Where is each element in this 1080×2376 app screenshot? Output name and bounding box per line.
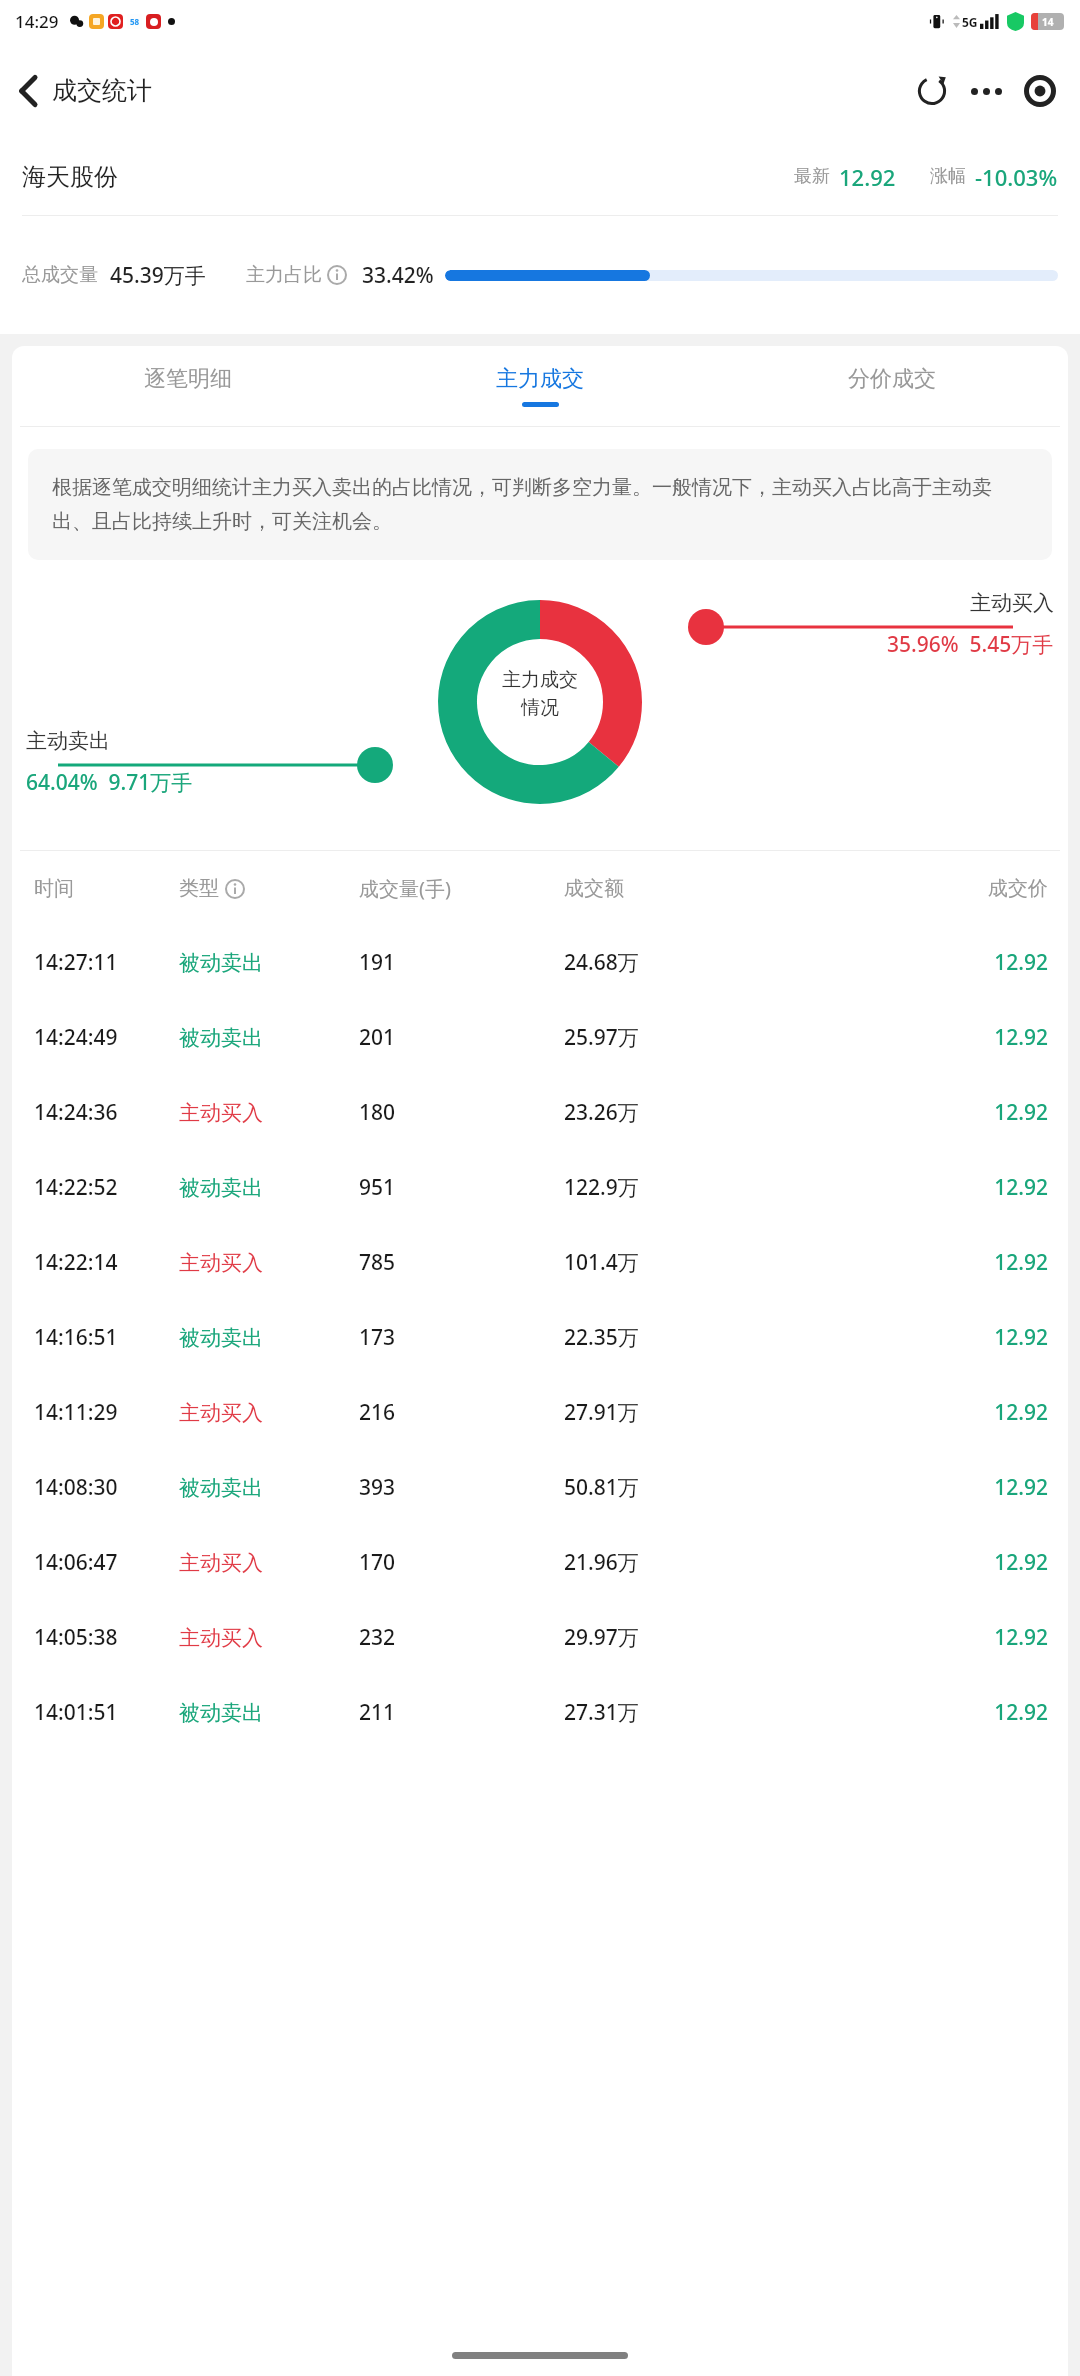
staticText: 785	[359, 1248, 564, 1277]
staticText: 24.68万	[564, 948, 764, 977]
staticText: 情况	[521, 696, 559, 720]
staticText: 14:24:49	[34, 1023, 179, 1052]
staticText: 主动买入	[970, 590, 1054, 616]
staticText: 总成交量	[22, 263, 98, 287]
staticText: 216	[359, 1398, 564, 1427]
button[interactable]: 主力占比	[246, 263, 347, 287]
staticText: 主动买入	[179, 1625, 359, 1651]
staticText: 29.97万	[564, 1623, 764, 1652]
button[interactable]: 14:22:14	[12, 1225, 1068, 1300]
staticText: 14:11:29	[34, 1398, 179, 1427]
staticText: 14:22:52	[34, 1173, 179, 1202]
staticText: 被动卖出	[179, 950, 359, 976]
button[interactable]: 14:05:38	[12, 1600, 1068, 1675]
button[interactable]: Back	[12, 68, 44, 114]
button[interactable]: Refresh	[911, 70, 953, 112]
button[interactable]: 14:06:47	[12, 1525, 1068, 1600]
staticText: 根据逐笔成交明细统计主力买入卖出的占比情况，可判断多空力量。一般情况下，主动买入…	[52, 475, 1028, 534]
staticText: 201	[359, 1023, 564, 1052]
staticText: 50.81万	[564, 1473, 764, 1502]
staticText: 主动买入	[179, 1250, 359, 1276]
staticText: 951	[359, 1173, 564, 1202]
staticText: 58	[130, 16, 140, 27]
button[interactable]: Target	[1020, 71, 1060, 111]
staticText: 12.92	[764, 1623, 1048, 1652]
staticText: 被动卖出	[179, 1475, 359, 1501]
staticText: 211	[359, 1698, 564, 1727]
staticText: 191	[359, 948, 564, 977]
staticText: 12.92	[764, 948, 1048, 977]
staticText: 主动买入	[179, 1550, 359, 1576]
staticText: 12.92	[764, 1248, 1048, 1277]
staticText: 12.92	[764, 1323, 1048, 1352]
staticText: 232	[359, 1623, 564, 1652]
staticText: 14	[1042, 15, 1054, 29]
staticText: 25.97万	[564, 1023, 764, 1052]
button[interactable]: 14:22:52	[12, 1150, 1068, 1225]
button[interactable]: More	[967, 76, 1006, 107]
staticText: 主动买入	[179, 1400, 359, 1426]
staticText: 14:06:47	[34, 1548, 179, 1577]
button[interactable]: 14:24:49	[12, 1000, 1068, 1075]
button[interactable]: 14:27:11	[12, 925, 1068, 1000]
staticText: 12.92	[764, 1173, 1048, 1202]
staticText: 22.35万	[564, 1323, 764, 1352]
staticText: 27.31万	[564, 1698, 764, 1727]
staticText: 12.92	[764, 1098, 1048, 1127]
staticText: 12.92	[764, 1548, 1048, 1577]
staticText: 12.92	[764, 1473, 1048, 1502]
staticText: 主动买入	[179, 1100, 359, 1126]
staticText: 逐笔明细	[144, 365, 232, 393]
staticText: 12.92	[764, 1398, 1048, 1427]
staticText: 最新	[794, 165, 830, 188]
staticText: 64.04% 9.71万手	[26, 768, 193, 797]
button[interactable]: 14:16:51	[12, 1300, 1068, 1375]
staticText: 170	[359, 1548, 564, 1577]
staticText: 180	[359, 1098, 564, 1127]
staticText: 14:08:30	[34, 1473, 179, 1502]
staticText: 14:01:51	[34, 1698, 179, 1727]
button[interactable]: 14:08:30	[12, 1450, 1068, 1525]
staticText: 成交统计	[52, 75, 152, 106]
staticText: 14:29	[15, 10, 59, 33]
staticText: 12.92	[764, 1698, 1048, 1727]
staticText: 27.91万	[564, 1398, 764, 1427]
staticText: 分价成交	[848, 365, 936, 393]
staticText: 海天股份	[22, 162, 118, 192]
staticText: 被动卖出	[179, 1700, 359, 1726]
staticText: 被动卖出	[179, 1175, 359, 1201]
staticText: 主力占比	[246, 263, 322, 287]
staticText: 成交额	[564, 876, 764, 901]
staticText: 45.39万手	[110, 261, 206, 290]
staticText: 主力成交	[496, 365, 584, 393]
staticText: 173	[359, 1323, 564, 1352]
staticText: 122.9万	[564, 1173, 764, 1202]
staticText: 393	[359, 1473, 564, 1502]
staticText: 类型	[179, 876, 219, 901]
button[interactable]: 14:24:36	[12, 1075, 1068, 1150]
staticText: 14:27:11	[34, 948, 179, 977]
staticText: 12.92	[839, 162, 896, 192]
staticText: 14:22:14	[34, 1248, 179, 1277]
staticText: 5G	[962, 14, 978, 30]
staticText: 主动卖出	[26, 728, 110, 754]
staticText: 主力成交	[502, 668, 578, 692]
staticText: 14:24:36	[34, 1098, 179, 1127]
staticText: 成交量(手)	[359, 875, 564, 902]
staticText: 成交价	[764, 876, 1048, 901]
staticText: 涨幅	[930, 165, 966, 188]
staticText: 23.26万	[564, 1098, 764, 1127]
staticText: 33.42%	[362, 261, 434, 290]
staticText: 101.4万	[564, 1248, 764, 1277]
button[interactable]: 分价成交	[716, 346, 1068, 426]
staticText: 35.96% 5.45万手	[887, 630, 1054, 659]
button[interactable]: 逐笔明细	[12, 346, 364, 426]
staticText: 12.92	[764, 1023, 1048, 1052]
button[interactable]: 主力成交	[364, 346, 716, 426]
staticText: 14:16:51	[34, 1323, 179, 1352]
button[interactable]: 14:11:29	[12, 1375, 1068, 1450]
button[interactable]: 14:01:51	[12, 1675, 1068, 1750]
staticText: -10.03%	[975, 162, 1058, 192]
staticText: 被动卖出	[179, 1325, 359, 1351]
button[interactable]: 类型	[179, 876, 359, 901]
